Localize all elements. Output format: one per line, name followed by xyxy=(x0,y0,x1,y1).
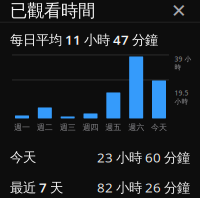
staticText: 週一 xyxy=(14,122,30,132)
staticText: 週三 xyxy=(60,122,76,132)
staticText: 19.5 xyxy=(174,88,188,97)
button[interactable]: 今天 xyxy=(0,146,200,168)
staticText: 最近 7 天 xyxy=(10,178,63,196)
staticText: 39 小 xyxy=(174,54,191,63)
staticText: 82 小時 26 分鐘 xyxy=(97,178,190,196)
staticText: 週六 xyxy=(128,122,144,132)
staticText: 小時 xyxy=(174,97,188,105)
staticText: 週二 xyxy=(37,122,53,132)
staticText: 今天 xyxy=(151,122,167,132)
staticText: ✕ xyxy=(171,0,187,21)
staticText: 週五 xyxy=(105,122,121,132)
staticText: 時 xyxy=(174,63,181,71)
staticText: 今天 xyxy=(10,149,36,165)
button[interactable]: 最近 7 天 xyxy=(0,176,200,198)
staticText: 已觀看時間 xyxy=(10,0,95,21)
staticText: 23 小時 60 分鐘 xyxy=(97,148,190,166)
staticText: 週四 xyxy=(82,122,98,132)
button[interactable]: 關閉 xyxy=(168,0,190,22)
staticText: 每日平均 11 小時 47 分鐘 xyxy=(10,31,158,48)
